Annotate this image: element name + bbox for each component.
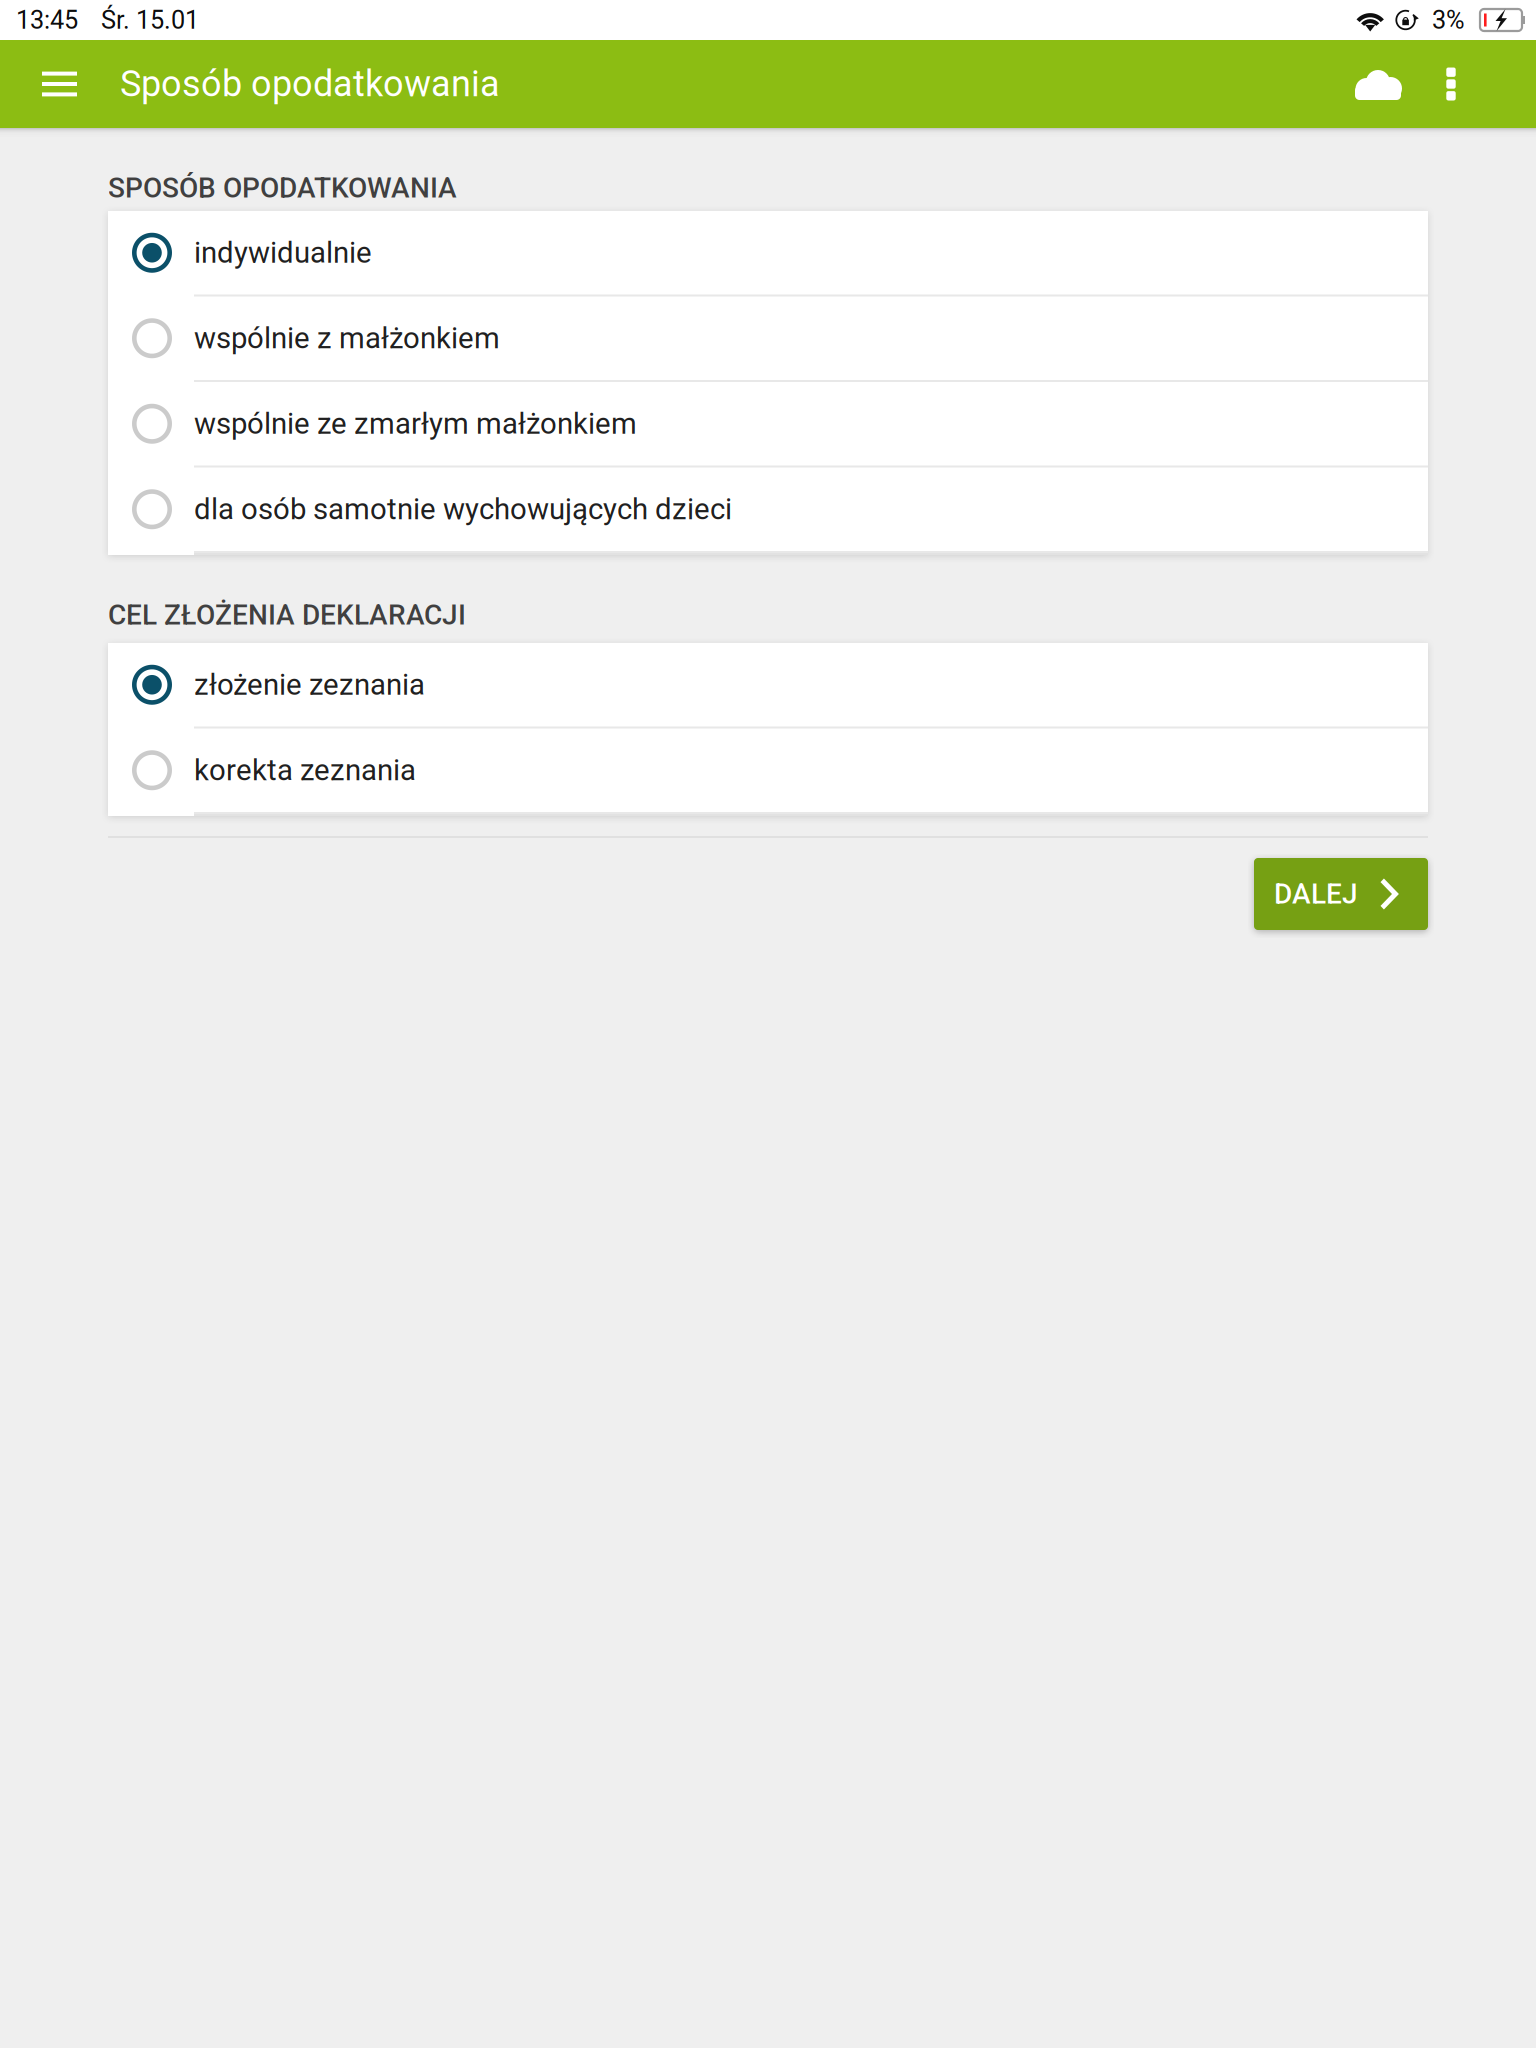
staticText: CEL ZŁOŻENIA DEKLARACJI [108,599,466,631]
button[interactable]: Cloud sync [1340,40,1418,128]
button[interactable]: złożenie zeznania [108,643,1428,728]
button[interactable]: More options [1418,40,1484,128]
staticText: SPOSÓB OPODATKOWANIA [108,172,457,204]
staticText: Śr. 15.01 [101,5,199,35]
staticText: wspólnie z małżonkiem [194,321,500,355]
button[interactable]: wspólnie z małżonkiem [108,296,1428,382]
button[interactable]: korekta zeznania [108,728,1428,814]
staticText: 3% [1432,5,1465,35]
staticText: Sposób opodatkowania [120,63,500,105]
staticText: indywidualnie [194,236,372,270]
staticText: DALEJ [1274,878,1358,910]
button[interactable]: Menu [24,40,95,128]
staticText: dla osób samotnie wychowujących dzieci [194,492,732,526]
staticText: złożenie zeznania [194,668,425,702]
button[interactable]: dla osób samotnie wychowujących dzieci [108,467,1428,553]
button[interactable]: indywidualnie [108,211,1428,296]
staticText: korekta zeznania [194,753,416,787]
staticText: wspólnie ze zmarłym małżonkiem [194,407,637,441]
button[interactable]: DALEJ [1254,858,1428,930]
button[interactable]: wspólnie ze zmarłym małżonkiem [108,382,1428,467]
staticText: 13:45 [16,5,78,35]
